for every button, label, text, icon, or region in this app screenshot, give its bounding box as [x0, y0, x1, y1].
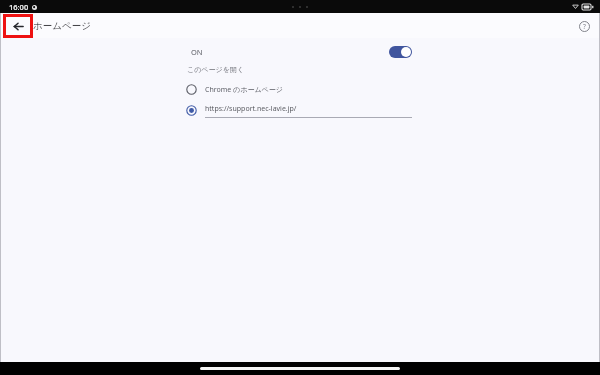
staticText: このページを開く — [187, 65, 244, 74]
button[interactable]: https://support.nec-lavie.jp/ — [0, 101, 600, 120]
button[interactable]: ON — [0, 40, 600, 63]
button[interactable]: Back — [6, 17, 30, 35]
staticText: ? — [583, 22, 586, 31]
staticText: https://support.nec-lavie.jp/ — [205, 104, 297, 114]
button[interactable]: Help — [574, 16, 594, 36]
staticText: ON — [191, 47, 203, 57]
staticText: 16:00 — [9, 2, 29, 12]
staticText: Chrome のホームページ — [205, 85, 283, 95]
button[interactable]: Chrome のホームページ — [0, 81, 600, 98]
staticText: ホームページ — [33, 20, 91, 32]
